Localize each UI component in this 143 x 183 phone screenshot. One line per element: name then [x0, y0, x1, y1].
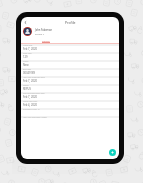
button[interactable]: Office Level Date [21, 100, 119, 108]
staticText: Admit date [23, 44, 33, 46]
button[interactable]: Admit date [21, 44, 119, 52]
staticText: Evaluation Chart 10 [23, 108, 40, 110]
staticText: Next Care Evaluation date [23, 76, 45, 78]
button[interactable]: Status [21, 60, 119, 68]
staticText: Badge 4 [35, 32, 45, 35]
button[interactable]: Back [22, 19, 28, 25]
staticText: Office Level Date [23, 100, 38, 102]
staticText: Test Care Determine date [23, 92, 45, 94]
staticText: REPUS [23, 87, 31, 91]
button[interactable]: Facility [21, 84, 119, 92]
button[interactable]: Add [109, 149, 116, 156]
staticText: Profile [65, 20, 76, 25]
staticText: Bed Level [23, 68, 32, 70]
staticText: Case Type [23, 52, 32, 54]
staticText: 129 [23, 55, 28, 59]
button[interactable]: Next Case Evaluation Added [21, 116, 119, 124]
button[interactable]: Next Care Evaluation date [21, 76, 119, 84]
staticText: Facility [23, 84, 29, 86]
staticText: Status [23, 60, 29, 62]
button[interactable]: Test Care Determine date [21, 92, 119, 100]
staticText: John Fakeman [35, 28, 52, 31]
staticText: New [23, 63, 29, 67]
staticText: Feb 7, 2020 [23, 95, 37, 99]
button[interactable]: Details [41, 38, 51, 43]
button[interactable]: Case Type [21, 52, 119, 60]
staticText: Feb 7, 2020 [23, 47, 37, 51]
staticText: Details [42, 39, 50, 42]
button[interactable]: Evaluation Chart 10 [21, 108, 119, 116]
staticText: 00349189 [23, 71, 35, 75]
staticText: Next Case Evaluation Added [23, 116, 47, 118]
button[interactable]: Bed Level [21, 68, 119, 76]
staticText: Feb 7, 2020 [23, 79, 37, 83]
staticText: Feb 4, 2020 [23, 103, 37, 107]
